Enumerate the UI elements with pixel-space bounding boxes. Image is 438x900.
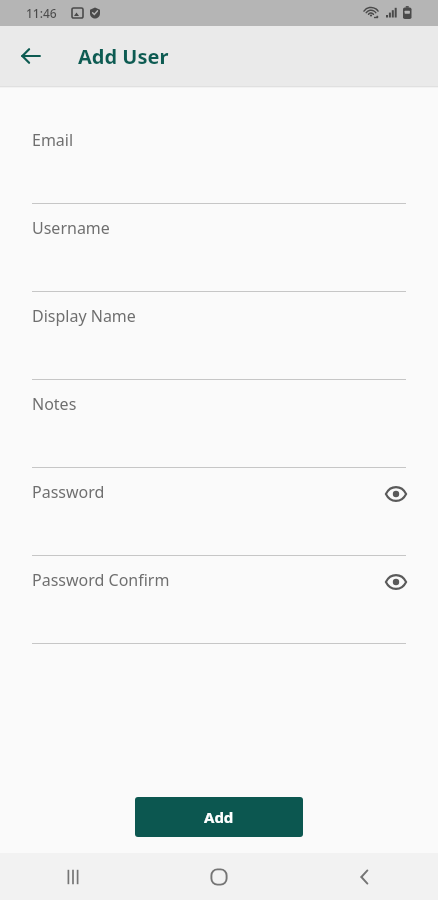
button[interactable]: Add: [135, 797, 303, 837]
button[interactable]: Recent apps: [0, 853, 146, 900]
button[interactable]: Notes: [0, 380, 438, 468]
staticText: Username: [32, 217, 110, 239]
button[interactable]: Back: [292, 853, 438, 900]
staticText: Email: [32, 129, 74, 151]
staticText: Display Name: [32, 305, 136, 327]
staticText: Notes: [32, 393, 77, 415]
button[interactable]: Email: [0, 116, 438, 204]
button[interactable]: Back: [9, 34, 53, 78]
staticText: Add User: [78, 43, 169, 70]
staticText: Password: [32, 481, 105, 503]
staticText: Add: [204, 807, 234, 827]
button[interactable]: Display Name: [0, 292, 438, 380]
staticText: 11:46: [26, 5, 57, 21]
button[interactable]: Home: [146, 853, 292, 900]
button[interactable]: Show password: [374, 472, 418, 516]
staticText: Password Confirm: [32, 569, 170, 591]
button[interactable]: Password: [0, 468, 438, 556]
button[interactable]: Show password: [374, 560, 418, 604]
button[interactable]: Username: [0, 204, 438, 292]
button[interactable]: Password Confirm: [0, 556, 438, 644]
